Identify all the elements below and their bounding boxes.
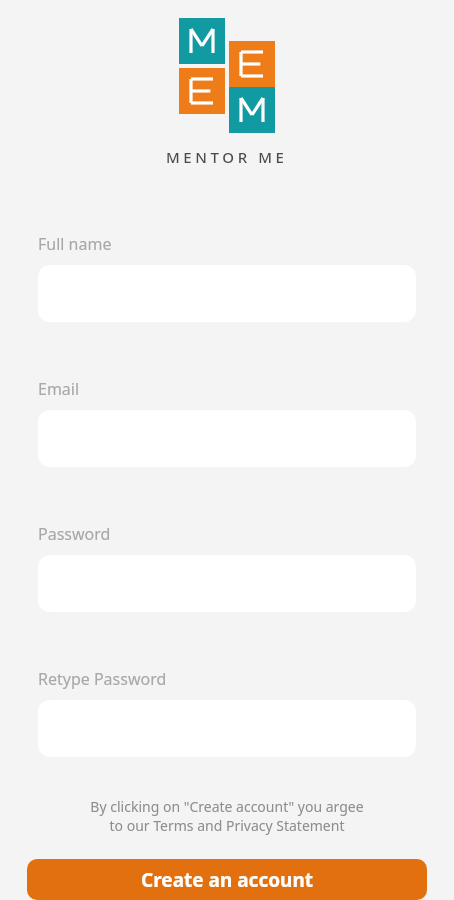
- staticText: Full name: [38, 233, 112, 255]
- staticText: By clicking on "Create account" you arge…: [30, 797, 424, 835]
- staticText: MENTOR ME: [166, 147, 288, 167]
- staticText: Retype Password: [38, 668, 167, 690]
- staticText: Email: [38, 378, 80, 400]
- staticText: Password: [38, 523, 111, 545]
- button[interactable]: Create an account: [27, 859, 427, 900]
- staticText: Create an account: [141, 867, 314, 893]
